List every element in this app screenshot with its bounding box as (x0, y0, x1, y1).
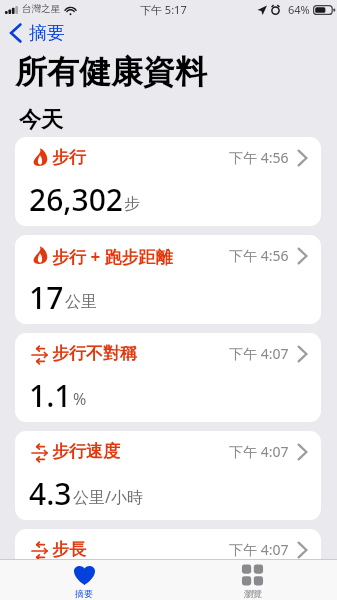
staticText: 摘要 (29, 22, 65, 45)
button[interactable]: 摘要 (0, 560, 168, 599)
button[interactable]: 瀏覽 (168, 560, 337, 599)
staticText: 步行 + 跑步距離 (52, 245, 173, 268)
staticText: 17 (29, 277, 64, 318)
staticText: 下午 5:17 (140, 2, 187, 17)
button[interactable]: 摘要 (0, 21, 73, 45)
staticText: 所有健康資料 (15, 52, 207, 92)
staticText: 台灣之星 (22, 3, 60, 15)
staticText: 摘要 (75, 588, 93, 599)
staticText: 瀏覽 (244, 588, 262, 599)
staticText: 26,302 (29, 179, 123, 220)
staticText: 步行不對稱 (52, 343, 137, 364)
staticText: 下午 4:07 (229, 442, 289, 461)
button[interactable]: 步行 (15, 137, 321, 226)
staticText: 64% (288, 2, 310, 17)
staticText: 公里 (65, 292, 97, 312)
staticText: 4.3 (29, 473, 72, 514)
staticText: 步長 (52, 539, 86, 560)
staticText: % (73, 388, 87, 410)
button[interactable]: 步行速度 (15, 431, 321, 520)
staticText: 下午 4:07 (229, 344, 289, 363)
staticText: 步行 (52, 147, 86, 168)
staticText: 下午 4:07 (229, 540, 289, 559)
staticText: 公里/小時 (73, 486, 143, 508)
button[interactable]: 步長 (15, 529, 321, 600)
staticText: 下午 4:56 (229, 246, 289, 265)
staticText: 下午 4:56 (229, 148, 289, 167)
staticText: 步 (124, 194, 140, 214)
staticText: 今天 (19, 106, 63, 134)
button[interactable]: 步行不對稱 (15, 333, 321, 422)
staticText: 1.1 (29, 375, 72, 416)
button[interactable]: 步行 + 跑步距離 (15, 235, 321, 324)
staticText: 步行速度 (52, 441, 120, 462)
